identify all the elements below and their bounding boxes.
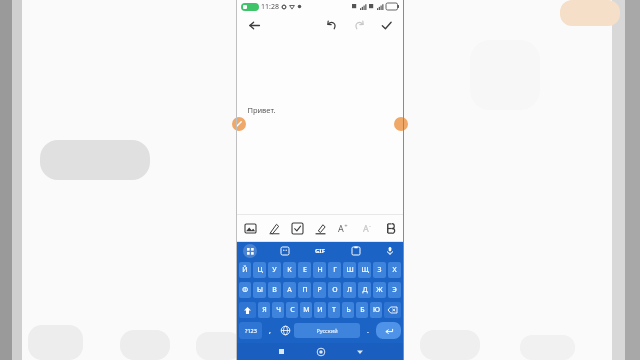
button[interactable]: Ж xyxy=(373,282,386,298)
button[interactable]: Т xyxy=(328,302,340,318)
button[interactable]: Highlight xyxy=(310,218,330,238)
button[interactable]: Ш xyxy=(343,262,356,278)
staticText: Р xyxy=(317,285,322,295)
staticText: С xyxy=(290,305,295,315)
button[interactable]: Clipboard xyxy=(349,244,363,258)
button[interactable]: Done xyxy=(377,16,395,34)
button[interactable]: Я xyxy=(258,302,270,318)
staticText: Ж xyxy=(376,285,383,295)
button[interactable]: GIF xyxy=(312,244,328,258)
button[interactable]: Б xyxy=(356,302,368,318)
button[interactable]: Redo xyxy=(350,16,368,34)
button[interactable]: З xyxy=(373,262,386,278)
staticText: 11:28 xyxy=(261,2,279,12)
staticText: Э xyxy=(392,285,397,295)
button[interactable]: Ь xyxy=(342,302,354,318)
staticText: ?123 xyxy=(245,327,257,334)
button[interactable]: Decrease text size xyxy=(357,218,377,238)
button[interactable]: Привет. xyxy=(237,37,403,214)
button[interactable]: Keyboard menu xyxy=(243,244,257,258)
staticText: Л xyxy=(347,285,352,295)
staticText: A xyxy=(363,222,369,234)
staticText: Ш xyxy=(346,265,354,275)
staticText: - xyxy=(369,222,371,230)
button[interactable]: Н xyxy=(313,262,326,278)
staticText: Е xyxy=(303,265,307,275)
staticText: М xyxy=(303,305,310,315)
button[interactable]: Ы xyxy=(253,282,266,298)
staticText: + xyxy=(344,222,348,230)
button[interactable]: И xyxy=(314,302,326,318)
staticText: . xyxy=(367,326,369,336)
button[interactable]: Г xyxy=(328,262,341,278)
button[interactable]: Ч xyxy=(272,302,284,318)
staticText: Б xyxy=(360,305,365,315)
button[interactable]: Bold xyxy=(380,218,400,238)
staticText: У xyxy=(272,265,277,275)
button[interactable]: Home xyxy=(312,343,329,360)
button[interactable]: К xyxy=(283,262,296,278)
staticText: И xyxy=(317,305,323,315)
button[interactable]: Р xyxy=(313,282,326,298)
staticText: Ф xyxy=(242,285,248,295)
staticText: Х xyxy=(392,265,397,275)
button[interactable]: Draw xyxy=(264,218,284,238)
button[interactable]: Hide keyboard xyxy=(351,343,368,360)
button[interactable]: М xyxy=(300,302,312,318)
staticText: В xyxy=(272,285,277,295)
button[interactable]: О xyxy=(328,282,341,298)
button[interactable]: Д xyxy=(358,282,371,298)
button[interactable]: Ф xyxy=(239,282,251,298)
staticText: Н xyxy=(317,265,323,275)
staticText: Ь xyxy=(346,305,351,315)
button[interactable]: Period xyxy=(361,320,375,341)
button[interactable]: Backspace xyxy=(384,302,401,318)
staticText: О xyxy=(332,285,338,295)
staticText: Ч xyxy=(276,305,281,315)
button[interactable]: Й xyxy=(239,262,251,278)
button[interactable]: Enter xyxy=(376,322,401,339)
staticText: А xyxy=(287,285,292,295)
button[interactable]: У xyxy=(268,262,281,278)
button[interactable]: Voice input xyxy=(383,244,397,258)
button[interactable]: Л xyxy=(343,282,356,298)
staticText: Привет. xyxy=(247,105,276,115)
button[interactable]: Emoji xyxy=(278,244,292,258)
staticText: Русский xyxy=(316,327,338,334)
staticText: Т xyxy=(332,305,336,315)
staticText: К xyxy=(287,265,292,275)
button[interactable]: Back xyxy=(245,16,263,34)
staticText: , xyxy=(269,326,271,336)
button[interactable]: Comma xyxy=(263,320,277,341)
button[interactable]: Undo xyxy=(323,16,341,34)
staticText: Ю xyxy=(373,305,380,315)
staticText: A xyxy=(338,222,344,234)
button[interactable]: Е xyxy=(298,262,311,278)
staticText: Щ xyxy=(361,265,369,275)
button[interactable]: Ц xyxy=(253,262,266,278)
staticText: З xyxy=(377,265,382,275)
button[interactable]: Shift xyxy=(239,302,256,318)
button[interactable]: Insert image xyxy=(240,218,260,238)
button[interactable]: Русский xyxy=(294,323,360,338)
button[interactable]: В xyxy=(268,282,281,298)
button[interactable]: Recents xyxy=(273,343,290,360)
button[interactable]: Checklist xyxy=(287,218,307,238)
staticText: Й xyxy=(242,265,248,275)
staticText: Г xyxy=(333,265,337,275)
button[interactable]: Щ xyxy=(358,262,371,278)
staticText: GIF xyxy=(315,247,325,255)
staticText: Ы xyxy=(257,285,263,295)
staticText: Д xyxy=(362,285,368,295)
button[interactable]: Change language xyxy=(277,322,293,339)
button[interactable]: А xyxy=(283,282,296,298)
button[interactable]: Э xyxy=(388,282,401,298)
button[interactable]: С xyxy=(286,302,298,318)
button[interactable]: ?123 xyxy=(239,322,262,339)
button[interactable]: Ю xyxy=(370,302,382,318)
staticText: П xyxy=(302,285,308,295)
button[interactable]: Increase text size xyxy=(333,218,353,238)
staticText: Я xyxy=(262,305,267,315)
button[interactable]: Х xyxy=(388,262,401,278)
button[interactable]: П xyxy=(298,282,311,298)
